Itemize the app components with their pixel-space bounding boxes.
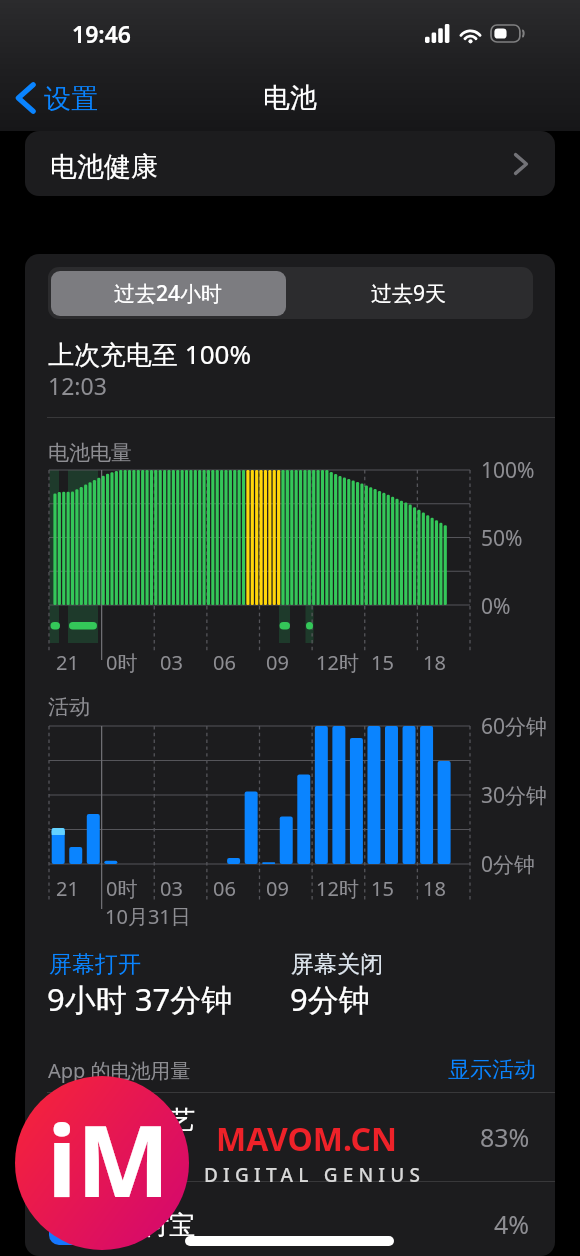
staticText: 9小时 37分钟 (47, 978, 233, 1020)
staticText: 活动 (48, 694, 90, 720)
staticText: 12时 (316, 875, 359, 902)
other: Back (14, 83, 38, 113)
button[interactable]: 爱奇艺 (25, 1092, 555, 1179)
staticText: 9分钟 (290, 978, 370, 1020)
staticText: 电池健康 (50, 150, 158, 184)
staticText: 50% (481, 524, 523, 553)
staticText: 上次充电至 100% (48, 336, 251, 372)
staticText: 爱奇艺 (117, 1104, 195, 1137)
staticText: 4% (494, 1207, 530, 1241)
staticText: MAVOM.CN (216, 1117, 397, 1161)
staticText: 30分钟 (481, 781, 548, 810)
staticText: 09 (266, 875, 289, 902)
staticText: 10月31日 (105, 903, 191, 930)
staticText: 03 (160, 875, 183, 902)
staticText: App 的电池用量 (48, 1057, 191, 1084)
staticText: 60分钟 (481, 712, 548, 741)
button[interactable]: 支付宝 (25, 1179, 555, 1256)
staticText: 电池 (263, 81, 317, 115)
staticText: 0% (481, 592, 511, 621)
staticText: 09 (266, 649, 289, 676)
button[interactable]: 过去24小时 (51, 271, 286, 316)
staticText: 15 (371, 875, 394, 902)
staticText: 屏幕打开 (49, 950, 141, 979)
staticText: 06 (213, 649, 236, 676)
button[interactable]: 显示活动 (448, 1056, 536, 1084)
staticText: 电池电量 (48, 440, 132, 466)
staticText: 100% (481, 456, 535, 485)
staticText: 过去24小时 (114, 279, 223, 308)
staticText: 18 (423, 875, 446, 902)
button[interactable]: Back (6, 72, 116, 124)
staticText: 12:03 (48, 370, 107, 401)
staticText: 21 (56, 875, 79, 902)
staticText: 0时 (106, 875, 138, 902)
staticText: 屏幕关闭 (291, 950, 383, 979)
staticText: 0分钟 (481, 850, 536, 879)
button[interactable]: 电池健康 (25, 131, 555, 196)
staticText: 83% (480, 1120, 530, 1154)
button[interactable]: 过去9天 (289, 271, 529, 316)
staticText: DIGITAL GENIUS (204, 1162, 426, 1188)
staticText: 03 (160, 649, 183, 676)
staticText: 15 (371, 649, 394, 676)
staticText: 设置 (44, 82, 98, 116)
staticText: 0时 (106, 649, 138, 676)
staticText: 19:46 (72, 18, 131, 49)
staticText: 支付宝 (117, 1209, 195, 1242)
staticText: 过去9天 (371, 279, 447, 308)
staticText: 18 (423, 649, 446, 676)
staticText: 显示活动 (448, 1056, 536, 1084)
staticText: 21 (56, 649, 79, 676)
staticText: 06 (213, 875, 236, 902)
staticText: iM (47, 1091, 170, 1226)
staticText: 12时 (316, 649, 359, 676)
